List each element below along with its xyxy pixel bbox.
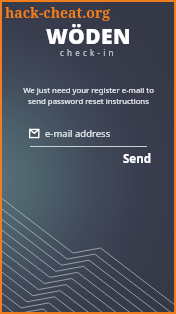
staticText: hack-cheat.org (5, 3, 111, 22)
staticText: We just need your register e-mail to sen… (23, 85, 154, 106)
button[interactable]: Send (118, 148, 156, 170)
staticText: e-mail address (45, 127, 111, 140)
staticText: check-in (60, 47, 117, 58)
staticText: Send (123, 151, 151, 167)
staticText: WÖDEN (46, 22, 131, 51)
